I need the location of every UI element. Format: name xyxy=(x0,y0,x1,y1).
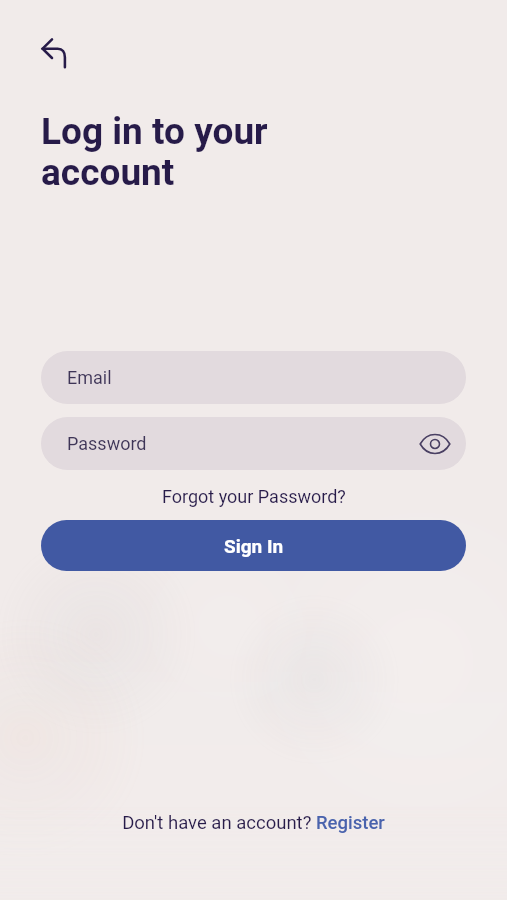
button[interactable]: Email xyxy=(41,351,466,404)
button[interactable]: Don't have an account? Register xyxy=(122,812,385,834)
button[interactable]: Forgot your Password? xyxy=(162,486,346,507)
button[interactable]: Back xyxy=(32,28,80,76)
button[interactable]: Sign In xyxy=(41,520,466,571)
staticText: Log in to your account xyxy=(41,110,268,194)
staticText: Password xyxy=(67,433,147,454)
button[interactable]: Show password xyxy=(415,424,455,464)
staticText: Email xyxy=(67,367,112,388)
button[interactable]: Password xyxy=(41,417,466,470)
staticText: Sign In xyxy=(224,535,284,557)
